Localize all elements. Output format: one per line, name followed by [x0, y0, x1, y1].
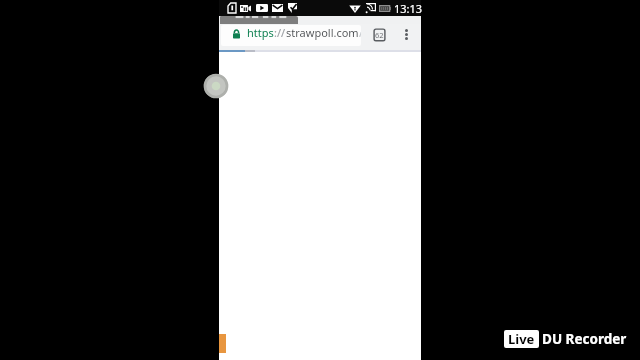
staticText: 13:13 [394, 1, 423, 16]
staticText: /1p [359, 25, 361, 40]
staticText: https [247, 25, 274, 40]
staticText: :// [274, 25, 286, 40]
button[interactable]: Switch tabs, 62 open [372, 27, 387, 42]
staticText: strawpoll.com [286, 25, 359, 40]
staticText: DU Recorder [542, 330, 627, 348]
staticText: 62 [375, 30, 384, 40]
staticText: Live [508, 330, 535, 348]
button[interactable] [220, 16, 298, 24]
button[interactable]: More options [399, 27, 413, 41]
button[interactable]: https [221, 25, 361, 46]
